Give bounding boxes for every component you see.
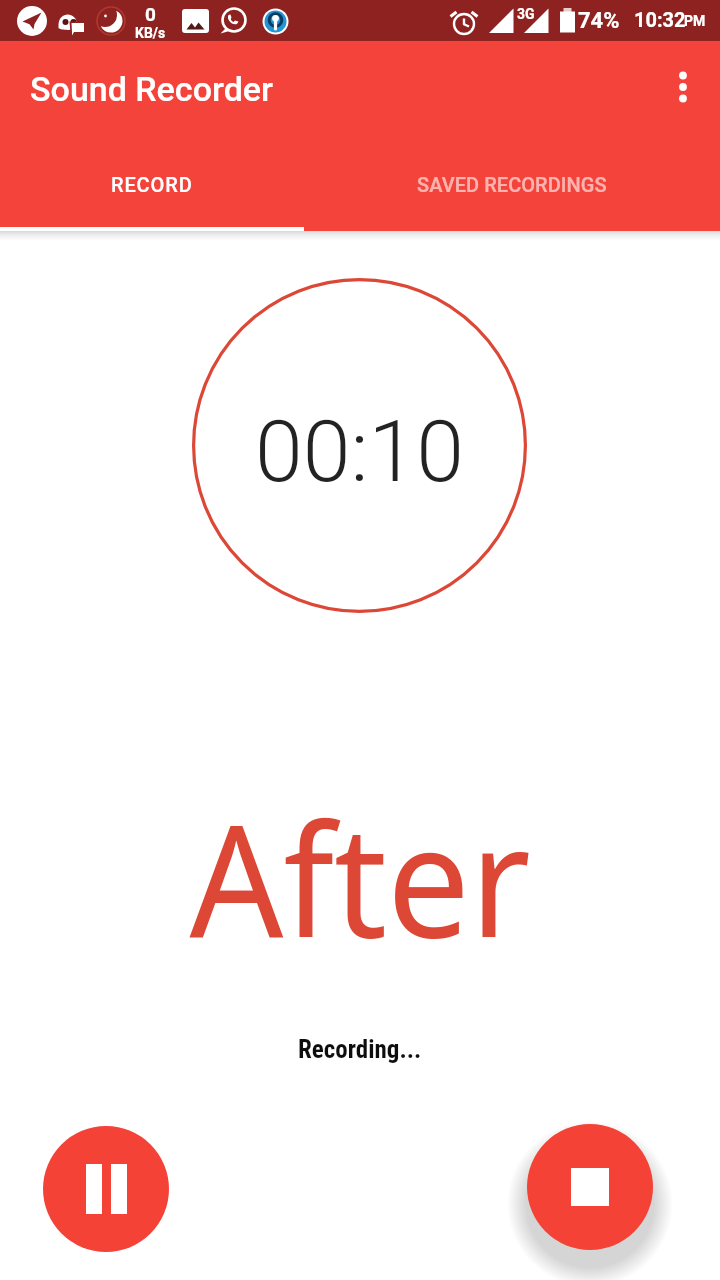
- button[interactable]: More options: [659, 63, 707, 111]
- staticText: Recording...: [298, 1035, 422, 1064]
- staticText: 10:32: [634, 8, 686, 31]
- button[interactable]: RECORD: [0, 136, 304, 231]
- staticText: PM: [684, 13, 706, 29]
- staticText: After: [189, 770, 531, 982]
- staticText: 3G: [517, 6, 535, 22]
- button[interactable]: Stop: [527, 1124, 653, 1250]
- button[interactable]: SAVED RECORDINGS: [304, 136, 720, 231]
- staticText: 00:10: [255, 401, 464, 502]
- button[interactable]: Pause: [43, 1126, 169, 1252]
- staticText: Sound Recorder: [30, 69, 274, 109]
- staticText: KB/s: [135, 25, 166, 41]
- staticText: RECORD: [111, 173, 193, 196]
- staticText: 0: [145, 3, 156, 25]
- staticText: SAVED RECORDINGS: [417, 173, 607, 196]
- staticText: 74%: [578, 8, 620, 34]
